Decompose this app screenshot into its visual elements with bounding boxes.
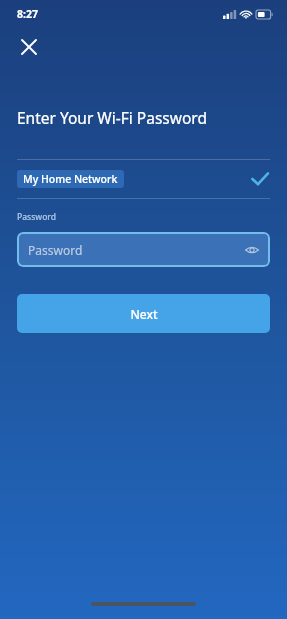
staticText: Enter Your Wi-Fi Password (17, 107, 207, 128)
button[interactable]: Password (17, 232, 270, 267)
staticText: Next (130, 306, 158, 322)
staticText: 8:27 (17, 7, 38, 21)
staticText: Password (17, 211, 57, 223)
button[interactable]: Show password (243, 241, 261, 259)
staticText: Password (28, 242, 83, 258)
staticText: My Home Network (23, 172, 118, 186)
button[interactable]: My Home Network (0, 160, 287, 198)
button[interactable]: Close (13, 31, 45, 63)
button[interactable]: Next (17, 294, 270, 333)
other: Selected (250, 169, 270, 189)
